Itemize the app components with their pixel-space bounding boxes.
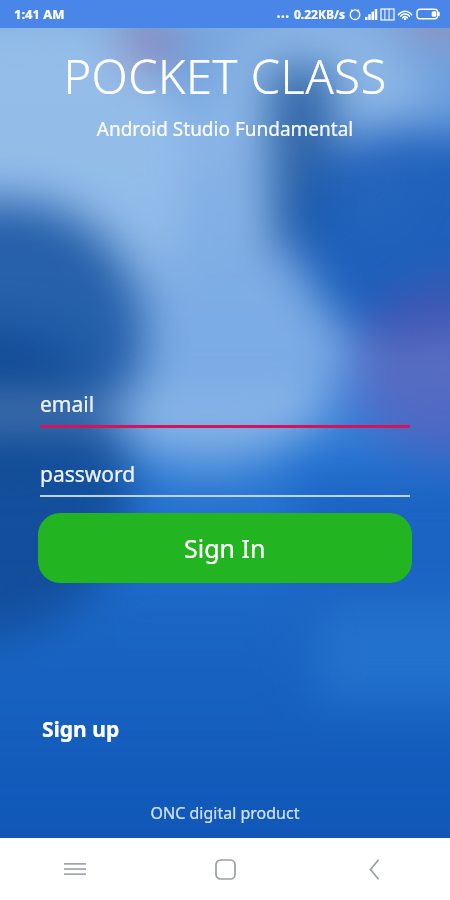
button[interactable]: Back — [300, 838, 450, 900]
staticText: Android Studio Fundamental — [0, 116, 450, 142]
staticText: Sign In — [184, 531, 266, 565]
button[interactable]: email — [40, 390, 410, 428]
staticText: password — [40, 460, 136, 489]
button[interactable]: Sign In — [38, 513, 412, 583]
staticText: 1:41 AM — [14, 5, 65, 23]
staticText: 0.22KB/s — [294, 6, 345, 22]
staticText: POCKET CLASS — [16, 44, 434, 108]
button[interactable]: Home — [150, 838, 300, 900]
staticText: email — [40, 390, 95, 419]
staticText: Sign up — [42, 715, 120, 744]
staticText: ONC digital product — [0, 802, 450, 824]
button[interactable]: Sign up — [40, 709, 122, 750]
button[interactable]: Recent apps — [0, 838, 150, 900]
button[interactable]: password — [40, 460, 410, 497]
